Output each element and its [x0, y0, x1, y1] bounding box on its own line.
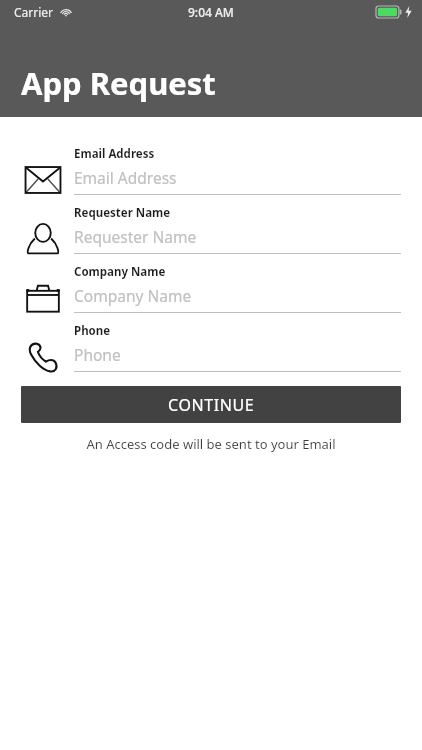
staticText: Company Name [74, 264, 166, 280]
staticText: Email Address [74, 167, 177, 188]
staticText: Requester Name [74, 205, 171, 221]
button[interactable]: Email Address [0, 142, 422, 201]
button[interactable]: Phone [0, 319, 422, 378]
button[interactable]: Requester Name [0, 201, 422, 260]
staticText: Email Address [74, 146, 155, 162]
staticText: 9:04 AM [188, 4, 234, 20]
staticText: App Request [21, 62, 216, 104]
staticText: Requester Name [74, 226, 197, 247]
button[interactable]: Company Name [0, 260, 422, 319]
staticText: Phone [74, 323, 111, 339]
staticText: An Access code will be sent to your Emai… [0, 435, 422, 453]
button[interactable]: CONTINUE [21, 386, 401, 423]
staticText: Company Name [74, 285, 192, 306]
staticText: Phone [74, 344, 121, 365]
staticText: Carrier [14, 4, 54, 20]
staticText: CONTINUE [168, 394, 255, 416]
